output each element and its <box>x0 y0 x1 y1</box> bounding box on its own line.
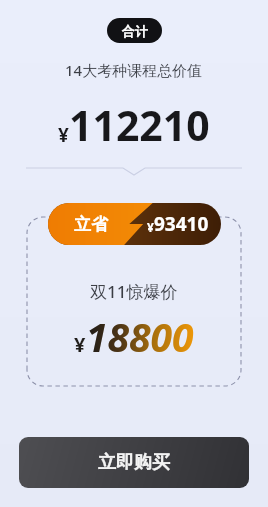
staticText: 立省 <box>74 214 108 235</box>
staticText: 18800 <box>86 310 194 363</box>
button[interactable]: 立省 <box>48 203 221 245</box>
staticText: ¥ <box>74 331 86 358</box>
staticText: 立即购买 <box>98 451 170 474</box>
button[interactable]: 合计 <box>107 18 162 43</box>
staticText: 112210 <box>69 97 210 153</box>
staticText: ¥ <box>147 219 154 235</box>
staticText: ¥ <box>58 122 69 148</box>
staticText: 合计 <box>122 23 148 39</box>
button[interactable]: 立即购买 <box>19 437 249 488</box>
staticText: 14大考种课程总价值 <box>65 60 203 80</box>
staticText: 93410 <box>154 211 209 237</box>
staticText: 双11惊爆价 <box>90 280 178 303</box>
